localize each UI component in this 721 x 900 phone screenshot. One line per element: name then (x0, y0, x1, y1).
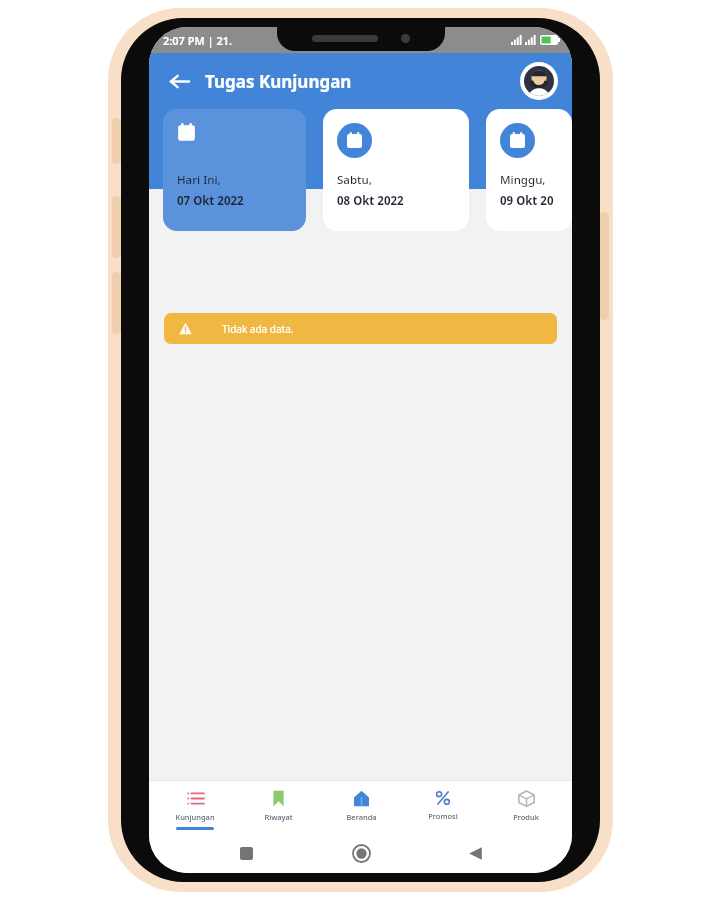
button[interactable]: Tidak ada data. (164, 313, 557, 344)
staticText: Kunjungan (175, 812, 215, 822)
button[interactable]: Home (344, 836, 378, 870)
staticText: 2:07 PM | 21. (163, 33, 233, 48)
button[interactable]: Back (159, 61, 199, 101)
button[interactable]: Kunjungan (158, 781, 232, 833)
button[interactable]: Minggu, (486, 109, 572, 231)
staticText: Tidak ada data. (222, 322, 294, 336)
staticText: 07 Okt 2022 (177, 193, 244, 209)
button[interactable]: Sabtu, (323, 109, 469, 231)
button[interactable]: Promosi (406, 781, 480, 833)
button[interactable]: Profile (520, 62, 558, 100)
staticText: Minggu, (500, 172, 546, 188)
staticText: Produk (513, 812, 539, 822)
staticText: Sabtu, (337, 172, 372, 188)
staticText: Riwayat (264, 812, 293, 822)
button[interactable]: Hari Ini, (163, 109, 306, 231)
staticText: Tugas Kunjungan (205, 70, 352, 93)
button[interactable]: Beranda (324, 781, 398, 833)
staticText: Beranda (346, 812, 377, 822)
button[interactable]: Produk (489, 781, 563, 833)
staticText: Promosi (428, 811, 458, 821)
staticText: 09 Okt 20 (500, 193, 554, 209)
staticText: 08 Okt 2022 (337, 193, 404, 209)
staticText: Hari Ini, (177, 172, 221, 188)
button[interactable]: Back (458, 836, 492, 870)
button[interactable]: Recents (229, 836, 263, 870)
button[interactable]: Riwayat (241, 781, 315, 833)
